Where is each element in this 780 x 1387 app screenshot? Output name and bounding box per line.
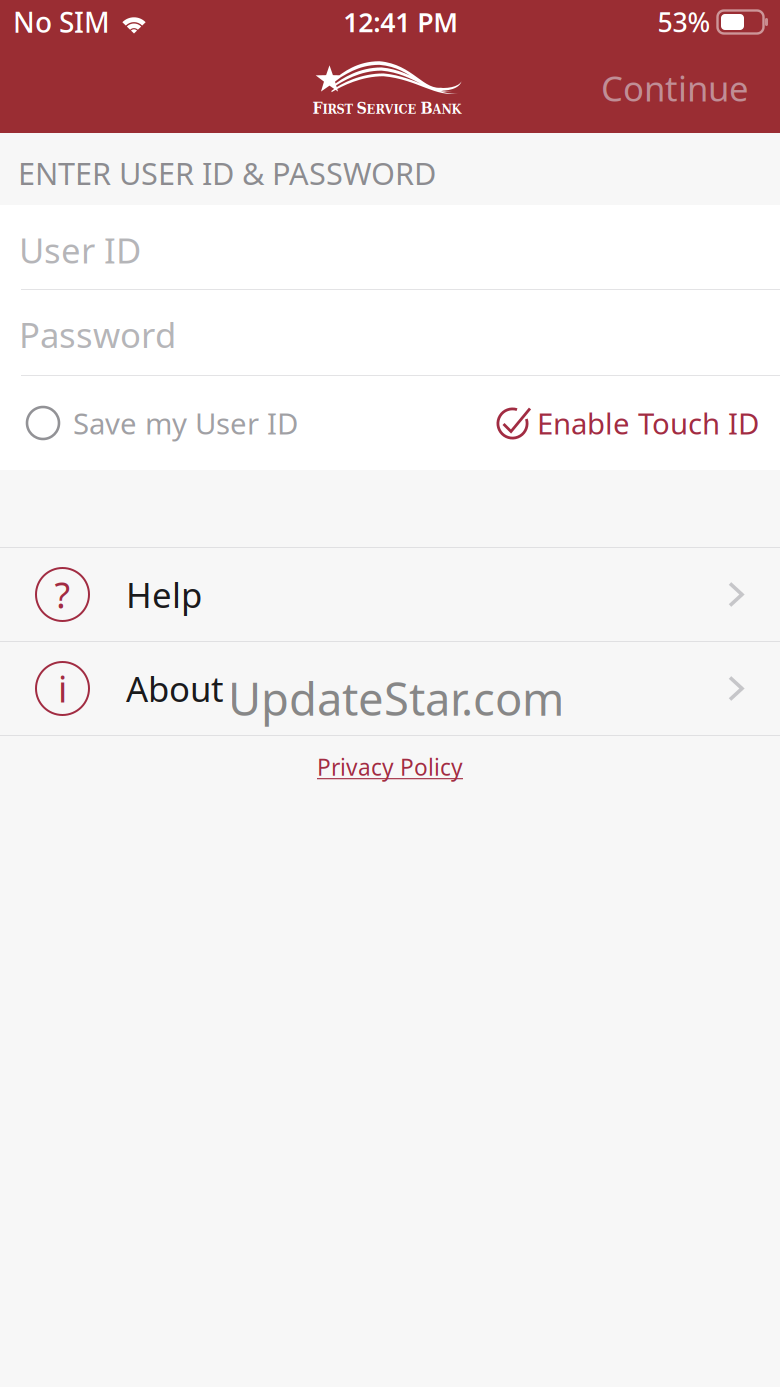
staticText: FIRST SERVICE BANK: [312, 99, 461, 117]
staticText: Password: [19, 311, 176, 357]
staticText: No SIM: [13, 3, 110, 41]
button[interactable]: Save my User ID: [27, 387, 298, 458]
staticText: i: [58, 665, 67, 712]
button[interactable]: Enable Touch ID: [490, 387, 759, 458]
staticText: User ID: [19, 227, 141, 273]
staticText: Privacy Policy: [317, 752, 463, 782]
staticText: Help: [126, 571, 202, 617]
staticText: ENTER USER ID & PASSWORD: [18, 153, 436, 193]
button[interactable]: ?: [0, 548, 780, 641]
button[interactable]: Privacy Policy: [297, 736, 483, 794]
staticText: ?: [54, 571, 70, 618]
staticText: Save my User ID: [73, 403, 298, 442]
button[interactable]: i: [0, 642, 780, 735]
staticText: 53%: [657, 4, 710, 40]
staticText: UpdateStar.com: [228, 668, 564, 728]
button[interactable]: Continue: [587, 55, 780, 121]
staticText: About: [126, 665, 224, 711]
staticText: 12:41 PM: [343, 4, 458, 40]
staticText: Continue: [601, 65, 749, 111]
staticText: Enable Touch ID: [537, 403, 759, 442]
